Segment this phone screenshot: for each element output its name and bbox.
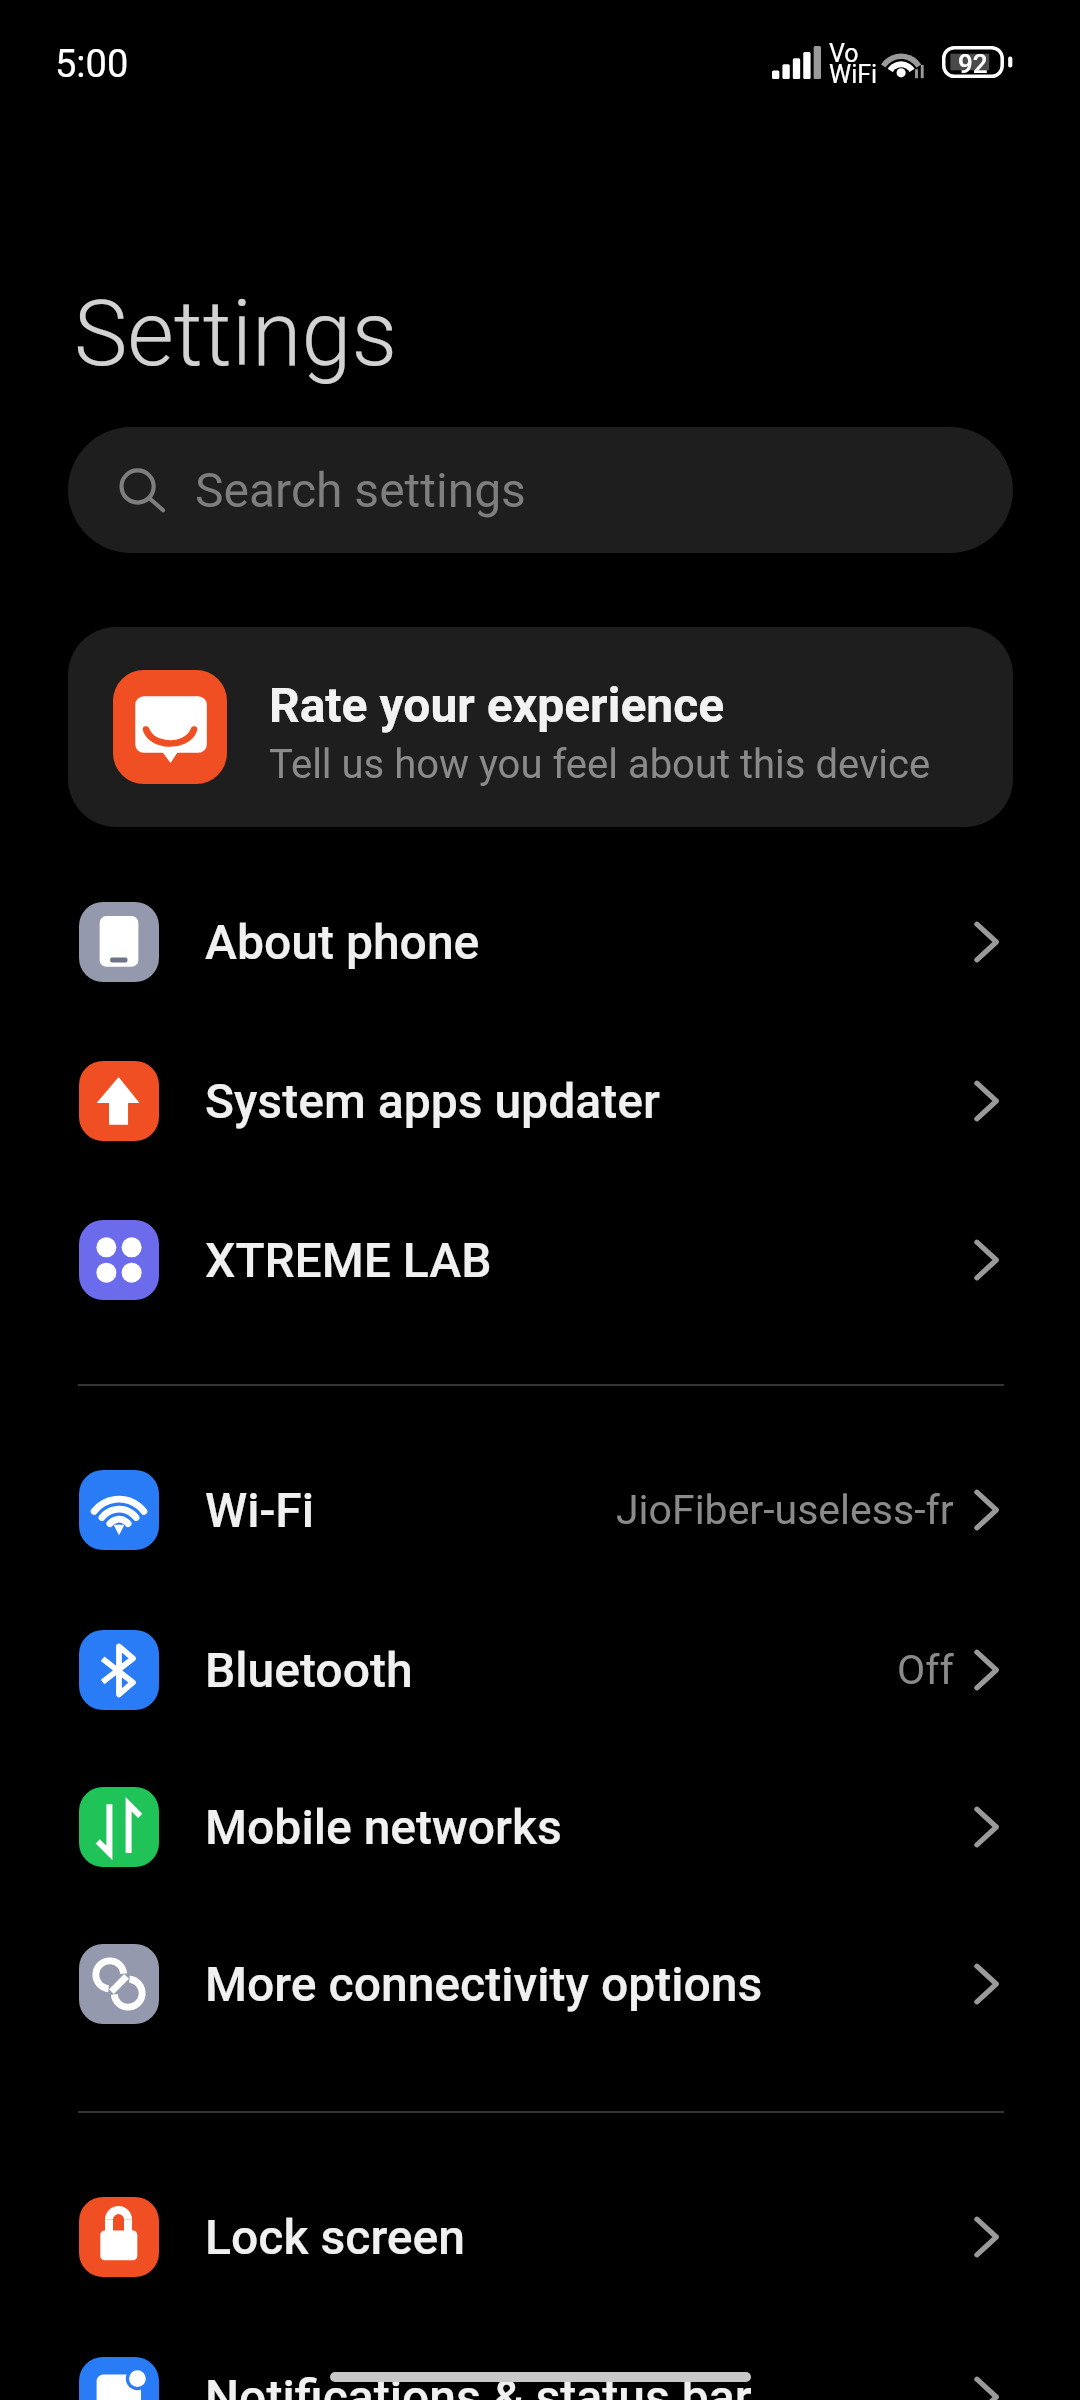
staticText: XTREME LAB [205, 1232, 492, 1288]
button[interactable]: About phone [0, 863, 1080, 1021]
button[interactable]: Lock screen [0, 2158, 1080, 2316]
staticText: Notifications & status bar [205, 2369, 752, 2400]
staticText: More connectivity options [205, 1956, 763, 2012]
button[interactable]: Bluetooth [0, 1591, 1080, 1749]
staticText: JioFiber-useless-fr [616, 1486, 954, 1534]
button[interactable]: System apps updater [0, 1022, 1080, 1180]
staticText: 5:00 [55, 42, 129, 87]
button[interactable]: Search settings [68, 427, 1013, 553]
staticText: Off [897, 1646, 954, 1694]
staticText: Rate your experience [269, 677, 725, 733]
button[interactable]: Notifications & status bar [0, 2318, 1080, 2400]
button[interactable]: Rate your experience [68, 627, 1013, 827]
staticText: 92 [958, 49, 988, 79]
staticText: WiFi [829, 60, 878, 89]
staticText: Tell us how you feel about this device [269, 741, 931, 788]
button[interactable]: XTREME LAB [0, 1181, 1080, 1339]
staticText: Lock screen [205, 2209, 466, 2265]
staticText: Wi-Fi [205, 1482, 314, 1538]
button[interactable]: Wi-Fi [0, 1431, 1080, 1589]
staticText: System apps updater [205, 1073, 660, 1129]
staticText: Bluetooth [205, 1642, 413, 1698]
staticText: Search settings [195, 462, 526, 518]
staticText: Settings [74, 282, 398, 387]
button[interactable]: Mobile networks [0, 1748, 1080, 1906]
button[interactable]: More connectivity options [0, 1905, 1080, 2063]
staticText: Mobile networks [205, 1799, 562, 1855]
staticText: About phone [205, 914, 480, 970]
staticText: Vo [829, 39, 859, 68]
